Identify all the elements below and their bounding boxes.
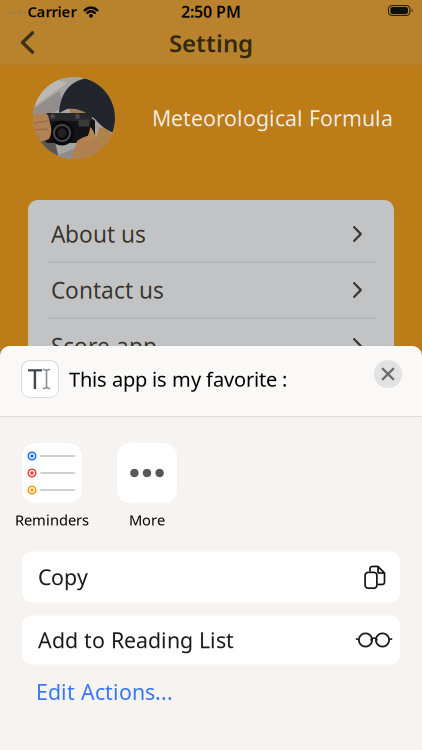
staticText: Contact us [51, 275, 164, 305]
button[interactable]: Reminders [22, 443, 82, 503]
staticText: 2:50 PM [181, 1, 241, 22]
button[interactable]: Copy [22, 551, 400, 602]
staticText: About us [51, 219, 146, 249]
staticText: Carrier [27, 2, 76, 21]
button[interactable]: Contact us [28, 262, 394, 317]
staticText: Copy [38, 563, 88, 591]
button[interactable]: Add to Reading List [22, 615, 400, 664]
staticText: Reminders [15, 510, 89, 529]
button[interactable]: About us [28, 206, 394, 261]
staticText: Add to Reading List [38, 626, 234, 654]
staticText: Meteorological Formula [152, 104, 393, 132]
button[interactable]: Back [20, 31, 36, 54]
staticText: Score app [51, 331, 157, 361]
staticText: This app is my favorite : [69, 366, 287, 392]
button[interactable]: Score app [28, 318, 394, 373]
staticText: More [129, 510, 165, 529]
staticText: Setting [169, 27, 253, 59]
staticText: Edit Actions... [36, 677, 173, 706]
staticText: T [27, 361, 42, 397]
button[interactable]: More [117, 443, 177, 503]
button[interactable]: Edit Actions... [36, 677, 173, 706]
button[interactable]: Close [374, 360, 402, 388]
